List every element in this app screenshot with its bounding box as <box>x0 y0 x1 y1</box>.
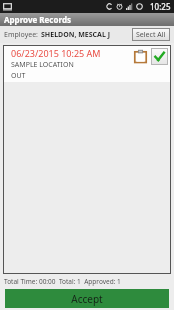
staticText: 06/23/2015 10:25 AM <box>11 47 101 59</box>
button[interactable]: Approve record <box>151 48 168 65</box>
staticText: Select All <box>136 30 166 40</box>
staticText: Total Time: 00:00 Total: 1 Approved: 1 <box>4 277 121 286</box>
staticText: SAMPLE LOCATION <box>11 60 74 70</box>
staticText: Accept <box>71 292 103 306</box>
staticText: Employee: <box>4 30 38 40</box>
staticText: 10:25 <box>150 1 171 12</box>
staticText: SHELDON, MESCAL J <box>41 30 110 40</box>
staticText: OUT <box>11 71 26 81</box>
button[interactable]: 06/23/2015 10:25 AM <box>3 45 171 82</box>
button[interactable]: Accept <box>5 289 169 308</box>
staticText: Approve Records <box>4 14 71 25</box>
button[interactable]: Select All <box>132 28 170 41</box>
button[interactable]: View record notes <box>132 48 149 65</box>
